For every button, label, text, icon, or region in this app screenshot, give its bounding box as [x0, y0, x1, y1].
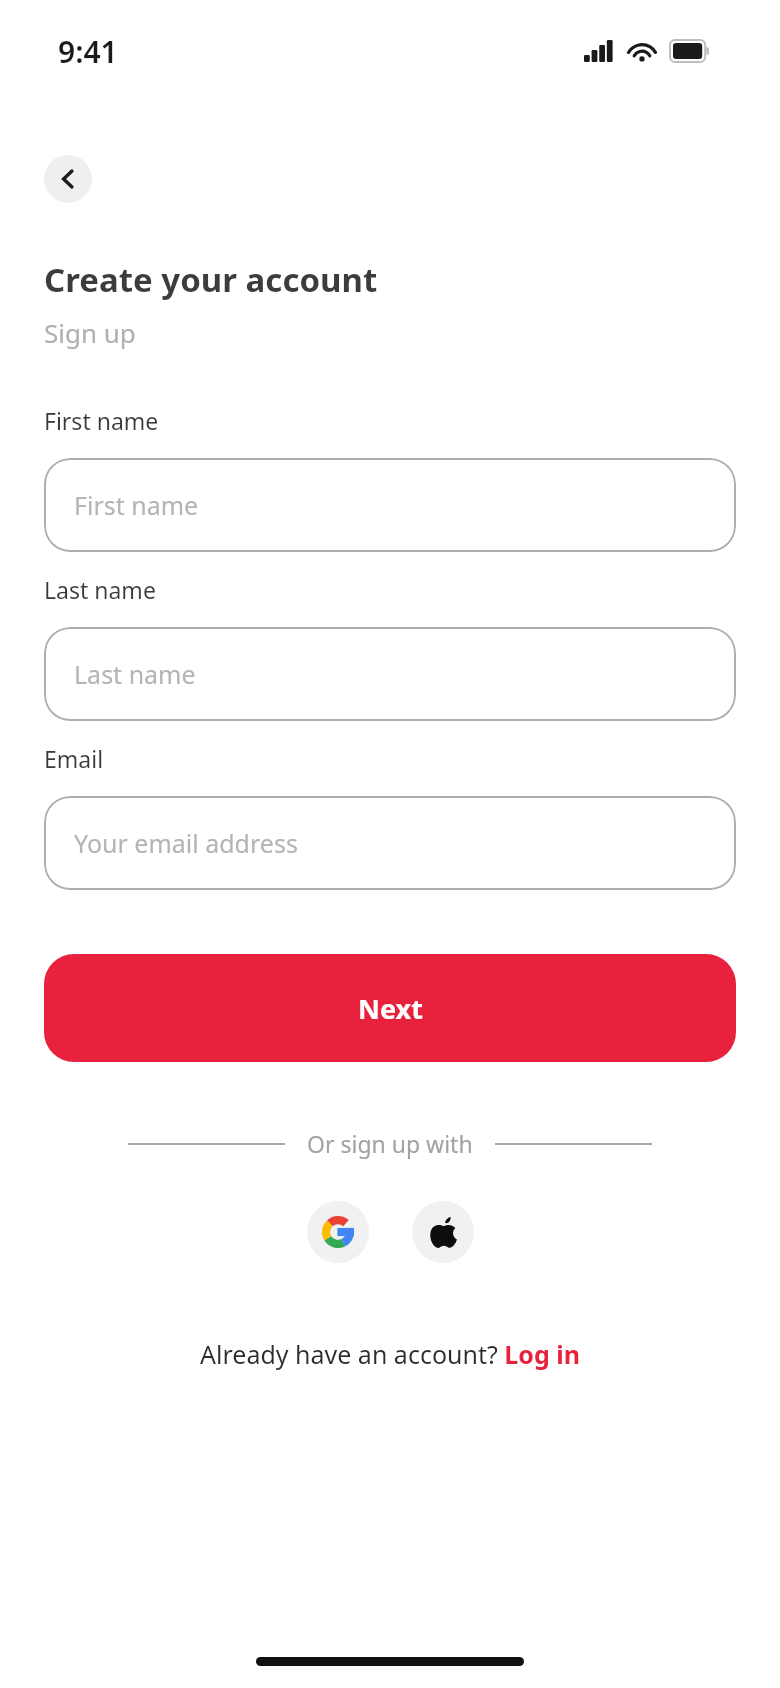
- staticText: Next: [358, 990, 423, 1027]
- staticText: First name: [44, 405, 159, 436]
- button[interactable]: First name: [44, 458, 736, 552]
- button[interactable]: Sign up with Apple: [412, 1201, 474, 1263]
- button[interactable]: Last name: [44, 627, 736, 721]
- button[interactable]: Already have an account? Log in: [200, 1337, 580, 1371]
- button[interactable]: Next: [44, 954, 736, 1062]
- staticText: Your email address: [74, 826, 298, 860]
- button[interactable]: Your email address: [44, 796, 736, 890]
- staticText: First name: [74, 488, 199, 522]
- button[interactable]: Sign up with Google: [307, 1201, 369, 1263]
- button[interactable]: Back: [44, 155, 92, 203]
- staticText: 9:41: [58, 31, 118, 72]
- staticText: Create your account: [44, 257, 378, 302]
- staticText: Last name: [74, 657, 196, 691]
- staticText: Or sign up with: [307, 1128, 473, 1159]
- staticText: Email: [44, 743, 104, 774]
- staticText: Sign up: [44, 315, 136, 350]
- staticText: Last name: [44, 574, 156, 605]
